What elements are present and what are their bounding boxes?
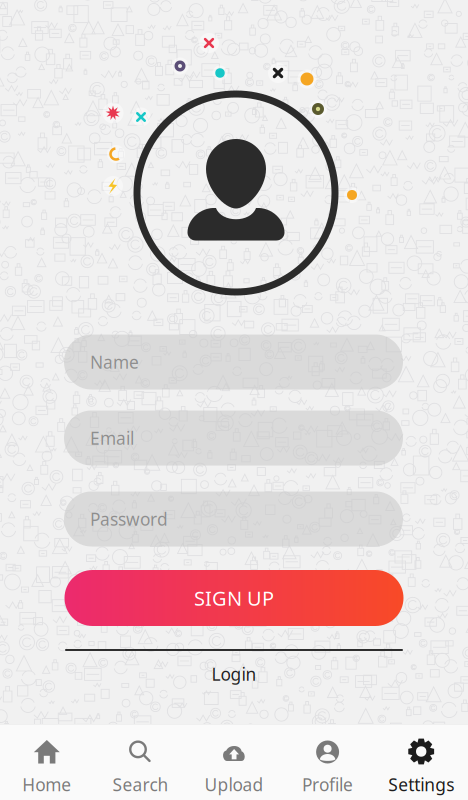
staticText: Email [90, 426, 134, 449]
staticText: Profile [302, 773, 353, 796]
staticText: Upload [204, 773, 263, 796]
button[interactable]: Name [64, 334, 403, 389]
staticText: Home [22, 773, 71, 796]
button[interactable]: Email [64, 410, 403, 465]
staticText: Name [90, 350, 139, 373]
button[interactable]: SIGN UP [64, 570, 403, 626]
staticText: Settings [388, 773, 454, 796]
button[interactable]: Search [94, 725, 187, 799]
button[interactable]: Choose profile photo [133, 90, 339, 296]
button[interactable]: Password [64, 491, 403, 546]
staticText: Login [211, 662, 256, 685]
button[interactable]: Home [0, 725, 94, 799]
staticText: SIGN UP [194, 585, 274, 611]
staticText: Password [90, 507, 168, 530]
button[interactable]: Profile [281, 725, 374, 799]
button[interactable]: Settings [374, 725, 468, 799]
staticText: Search [112, 773, 168, 796]
button[interactable]: Upload [187, 725, 281, 799]
button[interactable]: Login [174, 654, 294, 694]
